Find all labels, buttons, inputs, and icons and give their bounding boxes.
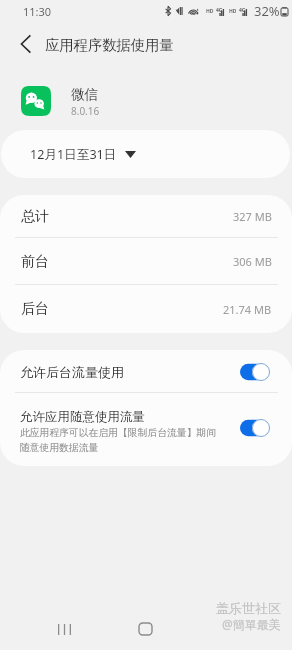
staticText: 微信	[71, 86, 98, 103]
button[interactable]: Back	[11, 30, 39, 58]
staticText: 327 MB	[233, 209, 272, 224]
button[interactable]: 前台	[0, 238, 292, 285]
staticText: 此应用程序可以在启用【限制后台流量】期间 随意使用数据流量	[20, 427, 216, 454]
button[interactable]: Toggle switch, on	[240, 363, 270, 381]
staticText: @簡單最美	[222, 616, 281, 632]
button[interactable]: 后台	[0, 285, 292, 333]
staticText: HD	[229, 8, 237, 15]
staticText: 8.0.16	[71, 104, 100, 118]
staticText: 盖乐世社区	[216, 600, 281, 616]
staticText: 后台	[21, 300, 49, 318]
staticText: 32%	[254, 2, 280, 20]
staticText: 11:30	[23, 4, 52, 19]
button[interactable]: 允许应用随意使用流量	[0, 393, 292, 466]
button[interactable]: 总计	[0, 195, 292, 238]
staticText: HD	[206, 8, 214, 15]
staticText: 4G	[239, 7, 246, 14]
staticText: 4G	[216, 7, 223, 14]
staticText: 306 MB	[233, 254, 272, 269]
staticText: 21.74 MB	[223, 302, 272, 317]
button[interactable]: 允许后台流量使用	[0, 350, 292, 393]
staticText: 应用程序数据使用量	[45, 36, 174, 54]
staticText: 允许后台流量使用	[20, 364, 124, 380]
button[interactable]: Toggle switch, on	[240, 419, 270, 437]
button[interactable]: Recents	[44, 612, 84, 646]
staticText: 12月1日至31日	[30, 146, 117, 163]
staticText: 前台	[21, 253, 49, 271]
staticText: 总计	[21, 208, 49, 226]
staticText: 允许应用随意使用流量	[20, 409, 145, 425]
button[interactable]: Home	[125, 612, 165, 646]
button[interactable]: 12月1日至31日	[1, 130, 290, 178]
